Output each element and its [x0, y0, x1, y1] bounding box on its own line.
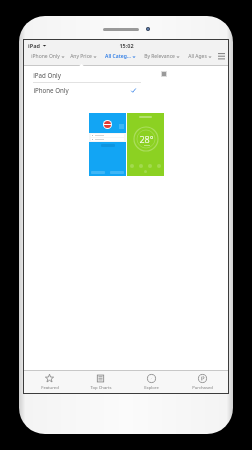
- staticText: All Categ...: [105, 53, 131, 60]
- button[interactable]: App screenshot, green thermostat app: [127, 113, 164, 176]
- button[interactable]: List view: [216, 51, 226, 61]
- staticText: All Ages: [188, 53, 207, 60]
- staticText: Any Price: [70, 53, 92, 60]
- button[interactable]: iPhone Only: [28, 53, 67, 60]
- button[interactable]: Top Charts: [75, 371, 126, 393]
- button[interactable]: App screenshot, blue login app: [89, 113, 126, 176]
- staticText: iPhone Only: [31, 53, 60, 60]
- staticText: Explore: [144, 385, 159, 391]
- staticText: iPad: [28, 42, 40, 49]
- staticText: Top Charts: [90, 385, 112, 391]
- button[interactable]: Any Price: [67, 53, 100, 60]
- staticText: 15:02: [119, 42, 134, 49]
- staticText: Featured: [41, 385, 59, 391]
- button[interactable]: Explore: [126, 371, 177, 393]
- button[interactable]: All Categ...: [100, 53, 140, 60]
- staticText: iPhone Only: [33, 86, 69, 94]
- button[interactable]: Featured: [24, 371, 75, 393]
- button[interactable]: iPad Only: [28, 68, 141, 82]
- button[interactable]: All Ages: [183, 53, 216, 60]
- staticText: iPad Only: [33, 71, 61, 79]
- button[interactable]: By Relevance: [140, 53, 183, 60]
- button[interactable]: iPhone Only: [28, 83, 141, 97]
- button[interactable]: Purchased: [177, 371, 228, 393]
- staticText: By Relevance: [144, 53, 175, 60]
- staticText: Purchased: [192, 385, 213, 391]
- staticText: 28°: [139, 133, 154, 145]
